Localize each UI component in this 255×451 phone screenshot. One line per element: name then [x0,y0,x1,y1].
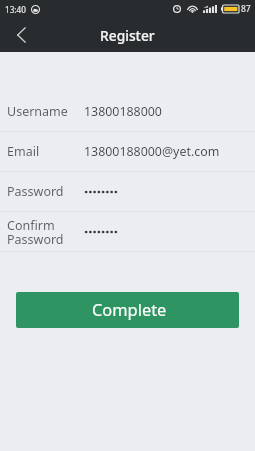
staticText: 13:40 [5,4,26,15]
staticText: 87 [241,3,251,15]
staticText: Email [7,143,40,160]
button[interactable]: Complete [16,292,239,328]
button[interactable]: Password [0,172,255,211]
staticText: Password [7,183,64,200]
button[interactable]: Email [0,132,255,171]
staticText: Username [7,103,68,120]
button[interactable]: Username [0,92,255,131]
staticText: Complete [92,298,167,320]
staticText: 13800188000@yet.com [84,143,220,160]
staticText: Confirm Password [7,217,64,248]
button[interactable]: Confirm Password [0,212,255,251]
staticText: 13800188000 [84,103,162,120]
staticText: Register [100,26,155,45]
button[interactable]: Back [0,18,42,52]
